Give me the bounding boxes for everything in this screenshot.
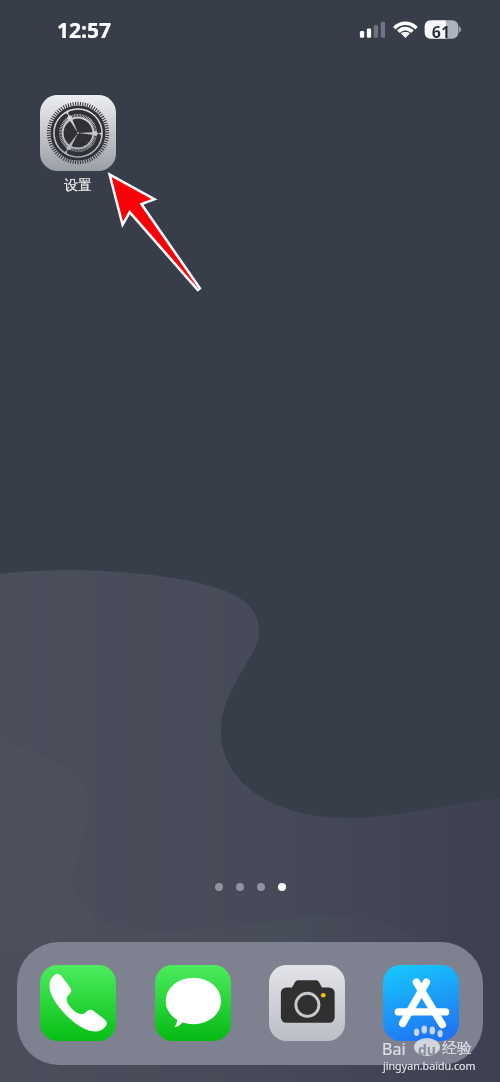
button[interactable] <box>40 95 116 171</box>
staticText: du <box>418 1040 436 1059</box>
staticText: 设置 <box>40 177 116 195</box>
button[interactable] <box>383 965 459 1041</box>
staticText: 12:57 <box>57 16 111 45</box>
staticText: 经验 <box>442 1039 472 1058</box>
button[interactable] <box>269 965 345 1041</box>
staticText: jingyan.baidu.com <box>383 1059 476 1074</box>
button[interactable] <box>155 965 231 1041</box>
staticText: Bai <box>382 1038 406 1060</box>
staticText: 61 <box>424 21 458 43</box>
button[interactable] <box>40 965 116 1041</box>
